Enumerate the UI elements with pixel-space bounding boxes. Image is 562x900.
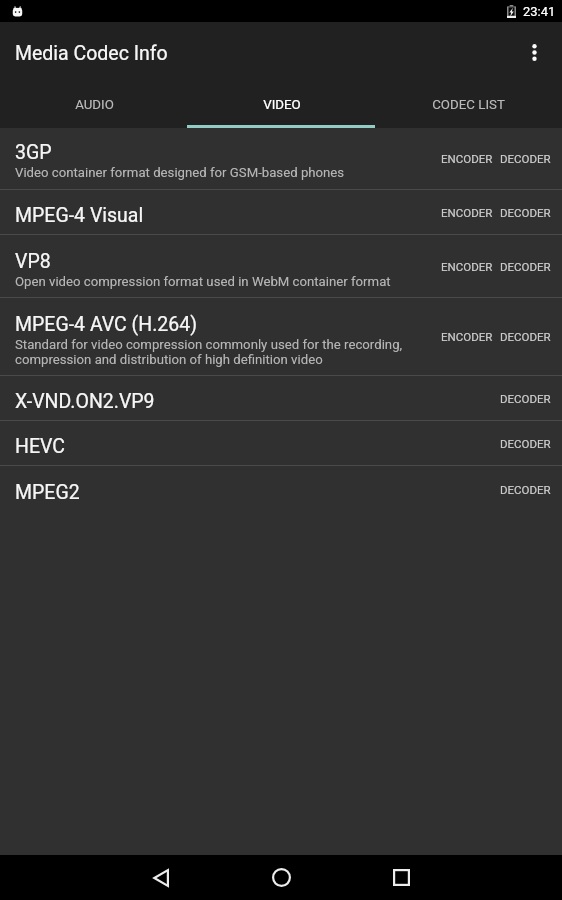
button[interactable]: Recent apps	[377, 855, 425, 900]
staticText: compression and distribution of high def…	[15, 352, 323, 367]
staticText: DECODER	[500, 330, 551, 343]
staticText: X-VND.ON2.VP9	[15, 390, 155, 413]
button[interactable]: MPEG2	[0, 466, 562, 512]
button[interactable]: VP8	[0, 235, 562, 297]
staticText: MPEG2	[15, 481, 80, 504]
button[interactable]: Home	[257, 855, 305, 900]
button[interactable]: MPEG-4 AVC (H.264)	[0, 298, 562, 375]
staticText: ENCODER	[441, 206, 493, 219]
button[interactable]: CODEC LIST	[375, 80, 562, 128]
staticText: DECODER	[500, 437, 551, 450]
staticText: AUDIO	[75, 97, 114, 113]
staticText: Video container format designed for GSM-…	[15, 165, 345, 180]
staticText: ENCODER	[441, 260, 493, 273]
button[interactable]: Back	[137, 855, 185, 900]
staticText: CODEC LIST	[432, 97, 505, 113]
staticText: MPEG-4 Visual	[15, 204, 144, 227]
staticText: DECODER	[500, 152, 551, 165]
button[interactable]: More options	[510, 28, 558, 76]
staticText: DECODER	[500, 260, 551, 273]
button[interactable]: X-VND.ON2.VP9	[0, 376, 562, 420]
staticText: 3GP	[15, 141, 52, 164]
button[interactable]: VIDEO	[188, 80, 375, 128]
staticText: Open video compression format used in We…	[15, 274, 391, 289]
staticText: MPEG-4 AVC (H.264)	[15, 313, 197, 336]
staticText: VIDEO	[263, 97, 301, 113]
staticText: 23:41	[523, 4, 556, 19]
staticText: ENCODER	[441, 152, 493, 165]
staticText: ENCODER	[441, 330, 493, 343]
staticText: HEVC	[15, 435, 65, 458]
staticText: Media Codec Info	[15, 42, 168, 65]
staticText: DECODER	[500, 392, 551, 405]
staticText: VP8	[15, 250, 51, 273]
staticText: Standard for video compression commonly …	[15, 337, 403, 352]
button[interactable]: MPEG-4 Visual	[0, 190, 562, 234]
staticText: DECODER	[500, 206, 551, 219]
staticText: DECODER	[500, 483, 551, 496]
button[interactable]: 3GP	[0, 128, 562, 189]
button[interactable]: HEVC	[0, 421, 562, 465]
button[interactable]: AUDIO	[0, 80, 188, 128]
